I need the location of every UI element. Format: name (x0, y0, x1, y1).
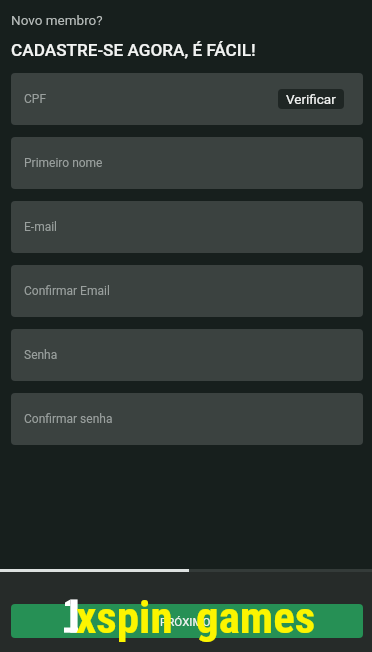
button[interactable]: E-mail (11, 201, 363, 253)
staticText: Verificar (286, 91, 336, 107)
staticText: PRÓXIMO (160, 615, 211, 628)
staticText: Novo membro? (11, 12, 103, 28)
button[interactable]: Verificar (278, 89, 344, 109)
staticText: CADASTRE-SE AGORA, É FÁCIL! (11, 40, 256, 60)
staticText: games (196, 591, 316, 644)
staticText: Confirmar senha (24, 412, 113, 426)
staticText: Confirmar Email (24, 284, 110, 298)
button[interactable]: Confirmar Email (11, 265, 363, 317)
button[interactable]: PRÓXIMO (11, 604, 363, 638)
staticText: xspin (76, 591, 173, 644)
staticText: Primeiro nome (24, 156, 103, 170)
staticText: Senha (24, 348, 58, 362)
button[interactable]: Senha (11, 329, 363, 381)
button[interactable]: Confirmar senha (11, 393, 363, 445)
button[interactable]: CPF (11, 73, 363, 125)
staticText: CPF (24, 92, 47, 106)
staticText: E-mail (24, 220, 58, 234)
button[interactable]: Primeiro nome (11, 137, 363, 189)
